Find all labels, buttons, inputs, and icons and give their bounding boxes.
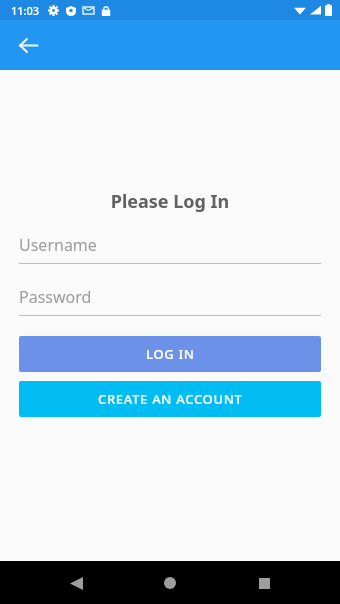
staticText: Password xyxy=(19,286,92,308)
button[interactable]: CREATE AN ACCOUNT xyxy=(19,381,321,417)
button[interactable]: Home xyxy=(150,563,190,603)
staticText: CREATE AN ACCOUNT xyxy=(98,390,243,408)
button[interactable]: Username xyxy=(19,234,321,264)
button[interactable]: Recent apps xyxy=(244,563,284,603)
staticText: LOG IN xyxy=(146,345,195,363)
staticText: 11:03 xyxy=(11,3,40,18)
button[interactable]: LOG IN xyxy=(19,336,321,372)
staticText: Username xyxy=(19,234,97,256)
button[interactable]: Back xyxy=(8,25,48,65)
button[interactable]: Password xyxy=(19,286,321,316)
staticText: Please Log In xyxy=(0,189,340,214)
button[interactable]: Back xyxy=(56,563,96,603)
